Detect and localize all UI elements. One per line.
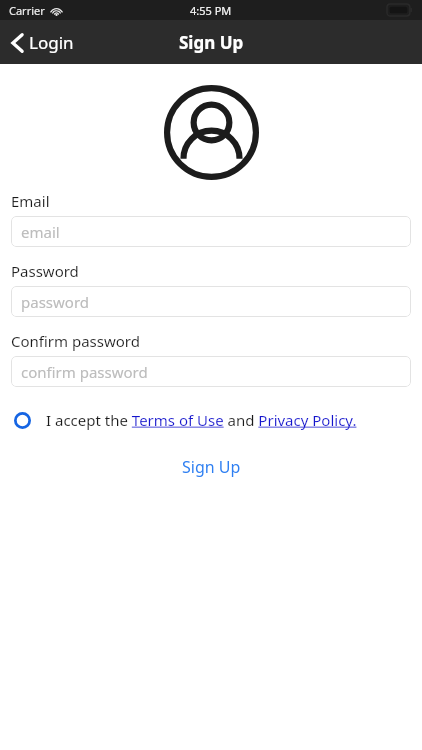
staticText: email [21, 222, 60, 242]
staticText: Confirm password [11, 331, 140, 351]
other: Back [12, 34, 23, 52]
staticText: 4:55 PM [190, 3, 232, 18]
button[interactable]: confirm password [11, 356, 411, 387]
staticText: Sign Up [179, 31, 244, 54]
staticText: Login [29, 31, 74, 54]
staticText: password [21, 292, 89, 312]
button[interactable]: Sign Up [164, 452, 259, 482]
button[interactable]: I accept the Terms of Use and Privacy Po… [46, 410, 357, 430]
staticText: confirm password [21, 362, 148, 382]
button[interactable]: password [11, 286, 411, 317]
staticText: Sign Up [182, 456, 241, 478]
staticText: Email [11, 191, 50, 211]
staticText: Password [11, 261, 79, 281]
button[interactable]: email [11, 216, 411, 247]
button[interactable]: Accept terms checkbox [11, 409, 33, 431]
button[interactable]: Back [0, 25, 86, 60]
staticText: Carrier [9, 3, 45, 18]
